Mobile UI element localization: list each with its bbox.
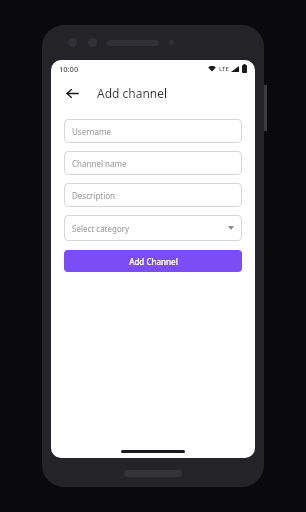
button[interactable]: Description	[64, 183, 242, 207]
button[interactable]: Username	[64, 119, 242, 143]
staticText: Select category	[72, 223, 130, 234]
staticText: LTE	[219, 65, 229, 73]
button[interactable]: Back	[59, 80, 85, 106]
button[interactable]: Channel name	[64, 151, 242, 175]
staticText: Channel name	[72, 158, 127, 169]
staticText: Description	[72, 190, 116, 201]
button[interactable]: Add Channel	[64, 250, 242, 272]
staticText: Add channel	[97, 85, 168, 101]
button[interactable]: Select category	[64, 215, 242, 241]
staticText: Add Channel	[129, 256, 178, 267]
staticText: 10:00	[59, 64, 79, 74]
staticText: Username	[72, 126, 111, 137]
